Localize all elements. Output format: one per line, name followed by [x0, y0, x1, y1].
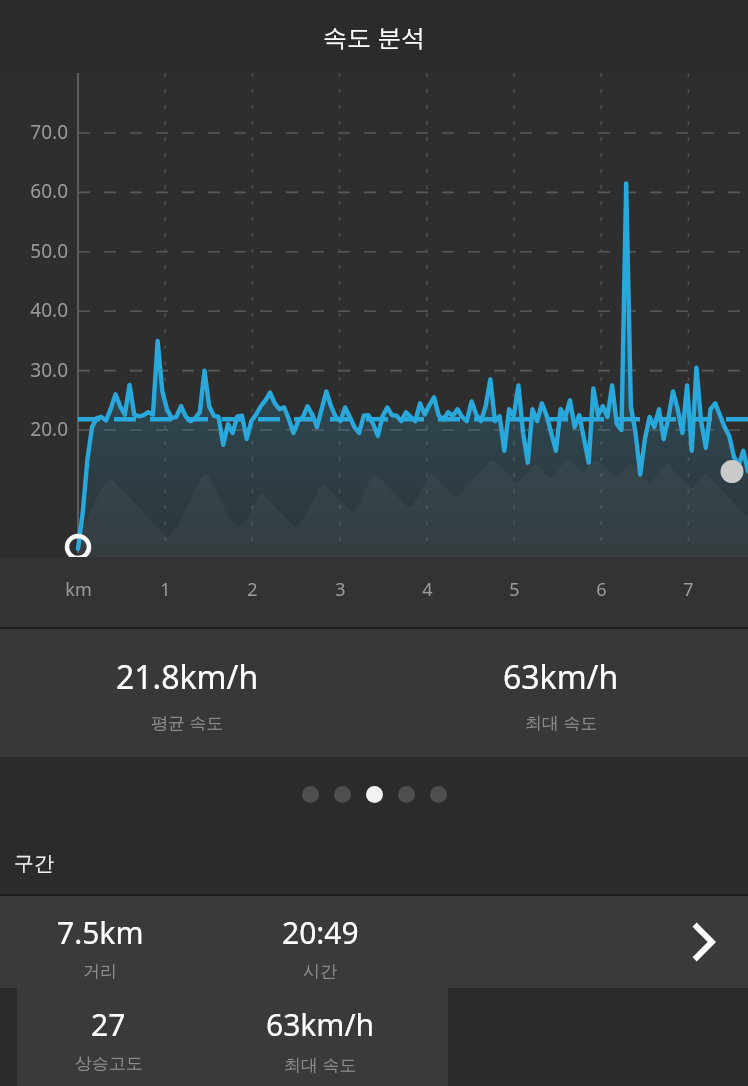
button[interactable]: [430, 786, 447, 803]
staticText: 50.0: [30, 238, 68, 264]
staticText: 7.5km: [57, 912, 144, 953]
staticText: 3: [335, 577, 346, 602]
button[interactable]: [366, 786, 383, 803]
staticText: 63km/h: [266, 1004, 375, 1045]
staticText: 20.0: [30, 416, 68, 442]
button[interactable]: [398, 786, 415, 803]
staticText: 최대 속도: [525, 711, 598, 734]
other: 구간 상세 보기: [660, 896, 748, 988]
staticText: 70.0: [30, 119, 68, 145]
staticText: 5: [509, 577, 520, 602]
button[interactable]: [302, 786, 319, 803]
staticText: km: [65, 577, 92, 602]
staticText: 21.8km/h: [116, 655, 259, 699]
staticText: 60.0: [30, 178, 68, 204]
button[interactable]: 63km/h: [374, 629, 748, 757]
staticText: 속도 분석: [323, 20, 426, 53]
button[interactable]: [334, 786, 351, 803]
staticText: 20:49: [282, 912, 359, 953]
staticText: 63km/h: [503, 655, 619, 699]
button[interactable]: 7.5km: [0, 896, 748, 988]
staticText: 최대 속도: [284, 1053, 357, 1076]
staticText: 7: [683, 577, 694, 602]
staticText: 40.0: [30, 297, 68, 323]
staticText: 평균 속도: [151, 711, 224, 734]
button[interactable]: 21.8km/h: [0, 629, 374, 757]
staticText: 거리: [83, 961, 117, 982]
staticText: 2: [247, 577, 258, 602]
button[interactable]: 27: [17, 988, 448, 1086]
staticText: 30.0: [30, 357, 68, 383]
staticText: 4: [422, 577, 433, 602]
staticText: 구간: [14, 851, 54, 876]
staticText: 상승고도: [75, 1053, 143, 1074]
staticText: 시간: [303, 961, 337, 982]
staticText: 1: [160, 577, 171, 602]
staticText: 27: [91, 1004, 126, 1045]
staticText: 6: [596, 577, 607, 602]
